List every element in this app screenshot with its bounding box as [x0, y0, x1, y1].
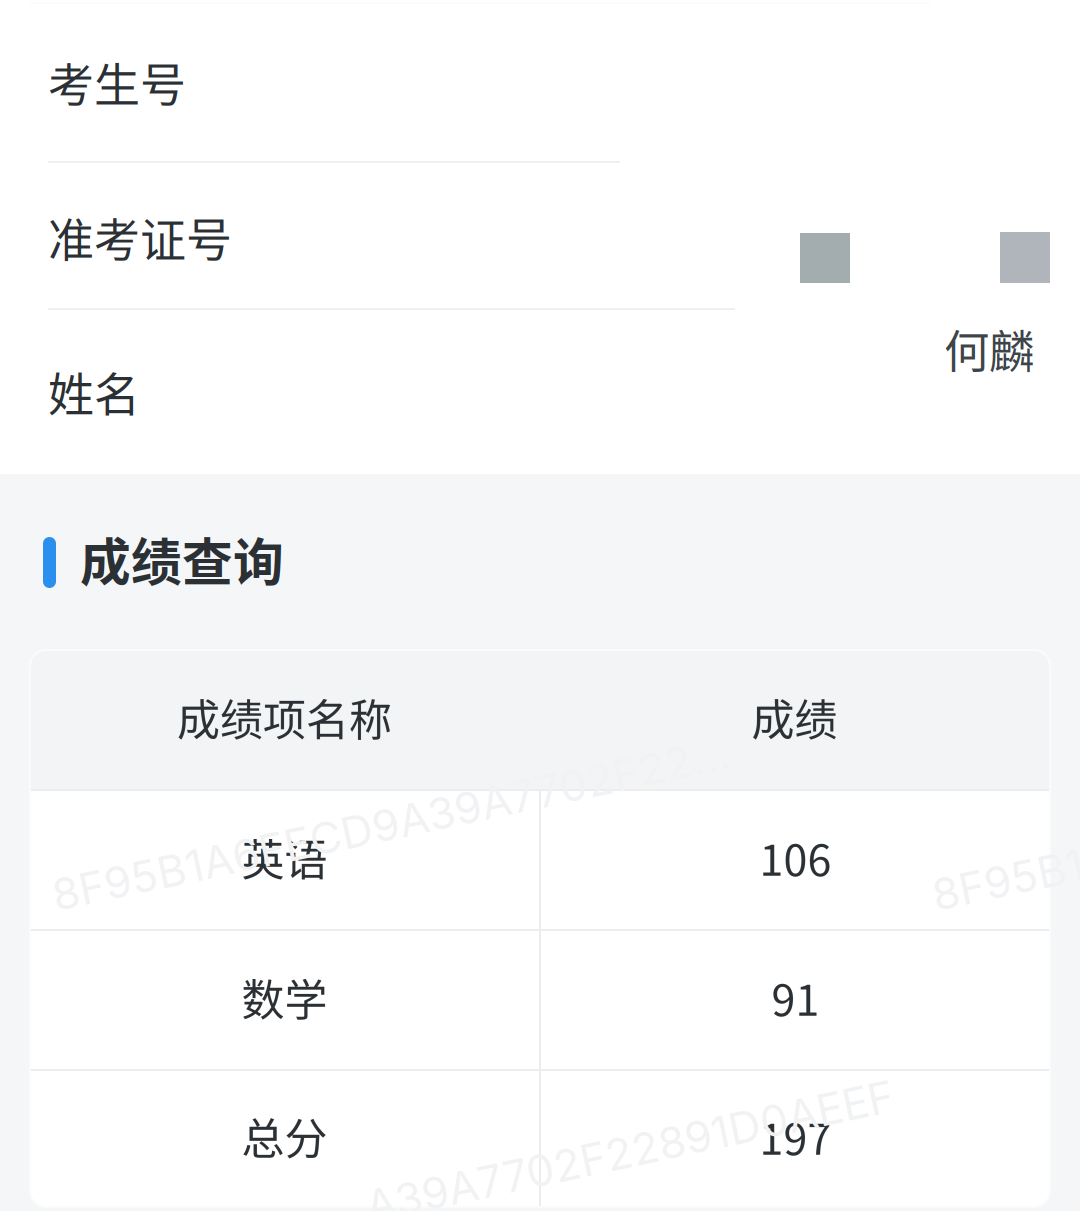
staticText: 考生号	[48, 48, 186, 115]
staticText: 91	[771, 966, 819, 1028]
staticText: A39A7702F22891D0AEEF	[360, 1122, 899, 1176]
staticText: 准考证号	[48, 203, 232, 270]
staticText: 成绩项名称	[177, 686, 392, 748]
staticText: 106	[759, 826, 831, 888]
staticText: 成绩查询	[80, 522, 284, 596]
button[interactable]: 姓名	[0, 0, 1080, 1211]
staticText: 197	[759, 1105, 831, 1167]
staticText: 数学	[241, 966, 327, 1028]
staticText: 8F95B1A6FECD9A39A7702F22891D0AEEF	[925, 796, 1080, 850]
button[interactable]: 准考证号	[0, 0, 1080, 1211]
staticText: 8F95B1A6FECD9A39A7702F22891D0AEEF	[45, 796, 745, 850]
staticText: 总分	[241, 1105, 327, 1167]
staticText: 何麟	[944, 316, 1034, 382]
staticText: 成绩	[751, 686, 837, 748]
staticText: 姓名	[48, 358, 140, 424]
staticText: 英语	[241, 826, 327, 888]
button[interactable]: 考生号	[0, 0, 1080, 1211]
